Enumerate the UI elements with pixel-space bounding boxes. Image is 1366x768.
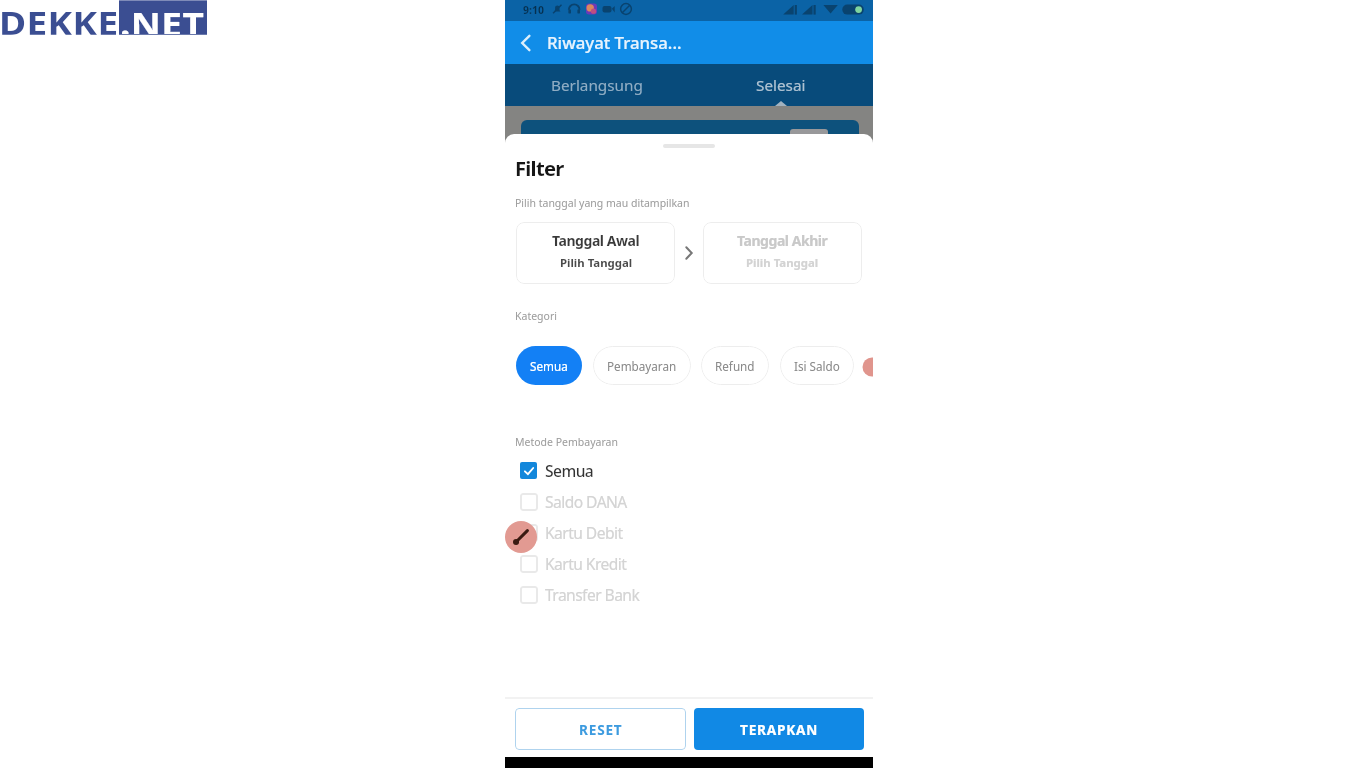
button[interactable]: Berlangsung — [505, 64, 689, 106]
button[interactable]: RESET — [515, 708, 686, 750]
staticText: Metode Pembayaran — [515, 435, 618, 449]
button[interactable]: Semua — [516, 346, 582, 385]
staticText: Berlangsung — [551, 75, 643, 96]
staticText: Selesai — [756, 75, 806, 96]
button[interactable]: Transfer Bank — [505, 579, 873, 610]
button[interactable]: TERAPKAN — [694, 708, 864, 750]
staticText: Pembayaran — [607, 358, 677, 374]
button[interactable]: Tanggal Akhir — [703, 222, 862, 284]
staticText: Riwayat Transa... — [547, 31, 682, 54]
button[interactable]: Saldo DANA — [505, 486, 873, 517]
staticText: Kartu Debit — [545, 522, 623, 543]
staticText: Kategori — [515, 309, 557, 323]
staticText: Pilih tanggal yang mau ditampilkan — [515, 196, 690, 210]
button[interactable]: Kartu Debit — [505, 517, 873, 548]
staticText: TERAPKAN — [740, 720, 819, 739]
staticText: Semua — [545, 460, 594, 481]
staticText: .NET — [120, 1, 205, 34]
staticText: Transfer Bank — [545, 584, 640, 605]
button[interactable]: Pembayaran — [593, 346, 691, 385]
staticText: Pilih Tanggal — [560, 255, 633, 271]
staticText: Refund — [715, 358, 755, 374]
button[interactable]: Refund — [701, 346, 769, 385]
button[interactable]: Tanggal Awal — [516, 222, 675, 284]
staticText: Saldo DANA — [545, 491, 627, 512]
staticText: Tanggal Awal — [552, 231, 640, 250]
button[interactable]: Isi Saldo — [780, 346, 854, 385]
staticText: Pilih Tanggal — [746, 255, 819, 271]
staticText: Filter — [515, 154, 564, 182]
button[interactable]: Back — [505, 21, 547, 64]
other: Pointer — [505, 521, 537, 553]
staticText: Semua — [530, 358, 568, 374]
button[interactable]: Selesai — [689, 64, 873, 106]
staticText: 9:10 — [523, 3, 544, 17]
staticText: Kartu Kredit — [545, 553, 627, 574]
button[interactable]: Semua — [505, 455, 873, 486]
button[interactable]: Kartu Kredit — [505, 548, 873, 579]
staticText: Isi Saldo — [794, 358, 840, 374]
staticText: RESET — [579, 720, 623, 739]
staticText: Tanggal Akhir — [737, 231, 828, 250]
staticText: DEKKE — [0, 0, 119, 35]
